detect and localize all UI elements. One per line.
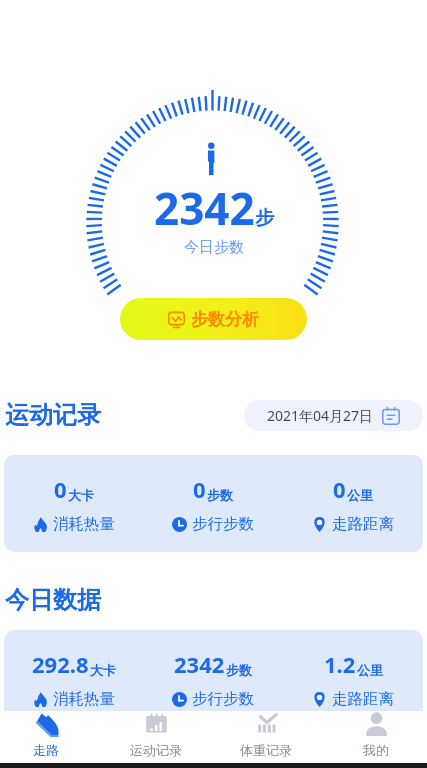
staticText: 消耗热量 [53, 689, 115, 709]
button[interactable]: 0 [4, 455, 423, 552]
staticText: 我的 [363, 742, 389, 758]
staticText: 公里 [357, 662, 383, 678]
staticText: 走路距离 [332, 514, 394, 534]
staticText: 体重记录 [240, 742, 292, 758]
staticText: 大卡 [68, 487, 94, 503]
staticText: 公里 [347, 487, 373, 503]
staticText: 今日数据 [5, 585, 101, 615]
staticText: 2021年04月27日 [267, 406, 374, 425]
staticText: 步数分析 [191, 309, 259, 330]
staticText: 消耗热量 [53, 514, 115, 534]
staticText: 步行步数 [192, 514, 254, 534]
staticText: 运动记录 [130, 742, 182, 758]
button[interactable]: 运动记录 [101, 709, 211, 761]
staticText: 走路距离 [332, 689, 394, 709]
staticText: 0 [54, 474, 67, 504]
button[interactable]: 2021年04月27日 [244, 400, 423, 431]
button[interactable]: 步数分析 [120, 298, 307, 340]
staticText: 走路 [33, 742, 59, 758]
staticText: 292.8 [32, 649, 89, 679]
staticText: 2342 [174, 649, 225, 679]
button[interactable]: 292.8 [4, 630, 423, 727]
staticText: 步数 [226, 662, 252, 678]
staticText: 今日步数 [184, 238, 244, 257]
button[interactable]: 走路 [0, 709, 101, 761]
staticText: 步 [255, 206, 274, 230]
staticText: 1.2 [324, 649, 356, 679]
staticText: 0 [193, 474, 206, 504]
staticText: 运动记录 [5, 400, 101, 430]
button[interactable]: 体重记录 [211, 709, 321, 761]
staticText: 2342 [154, 178, 255, 238]
button[interactable]: 我的 [321, 709, 427, 761]
staticText: 步行步数 [192, 689, 254, 709]
staticText: 0 [333, 474, 346, 504]
staticText: 大卡 [90, 662, 116, 678]
staticText: 步数 [207, 487, 233, 503]
